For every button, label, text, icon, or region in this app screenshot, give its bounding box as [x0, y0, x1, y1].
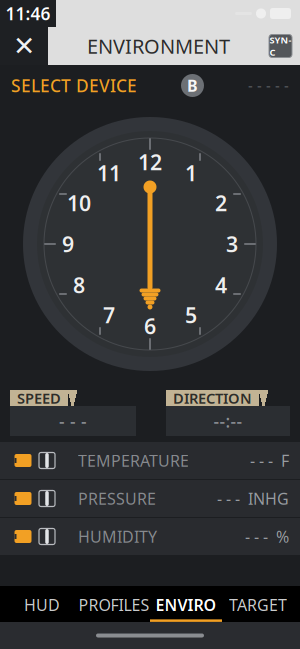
button[interactable]: PROFILES	[78, 586, 150, 622]
staticText: 11	[97, 159, 121, 187]
staticText: ENVIRONMENT	[87, 33, 230, 59]
staticText: - - - %	[245, 526, 289, 547]
button[interactable]: PRESSURE	[0, 480, 300, 517]
staticText: 5	[185, 301, 197, 329]
staticText: 8	[73, 271, 85, 299]
staticText: --:--	[213, 409, 242, 432]
staticText: ✕	[13, 31, 35, 61]
staticText: 7	[103, 301, 115, 329]
button[interactable]: HUMIDITY	[0, 518, 300, 555]
staticText: 9	[62, 230, 74, 258]
staticText: DIRECTION	[173, 388, 252, 408]
button[interactable]: Bluetooth	[178, 71, 206, 99]
button[interactable]: TARGET	[222, 586, 294, 622]
staticText: 11:46	[5, 2, 50, 25]
staticText: TEMPERATURE	[78, 450, 189, 471]
staticText: HUD	[24, 594, 60, 615]
staticText: 2	[215, 189, 227, 217]
button[interactable]: Sync	[269, 34, 292, 57]
staticText: 12	[138, 148, 162, 176]
staticText: PRESSURE	[78, 488, 156, 509]
staticText: 1	[185, 159, 197, 187]
staticText: SYNC	[269, 34, 291, 58]
button[interactable]: HUD	[6, 586, 78, 622]
staticText: - - -	[59, 409, 87, 432]
staticText: SPEED	[17, 388, 61, 408]
staticText: - - - - -	[248, 76, 289, 95]
staticText: 4	[215, 271, 227, 299]
staticText: B	[187, 75, 198, 96]
staticText: - - - F	[250, 450, 289, 471]
button[interactable]: SELECT DEVICE	[0, 66, 137, 105]
button[interactable]: Menu	[0, 27, 48, 65]
staticText: 10	[67, 189, 91, 217]
staticText: 6	[144, 312, 156, 340]
button[interactable]: ENVIRO	[150, 586, 222, 622]
staticText: TARGET	[229, 594, 287, 615]
staticText: SELECT DEVICE	[11, 74, 137, 97]
staticText: PROFILES	[78, 594, 149, 615]
staticText: - - - INHG	[217, 488, 289, 509]
button[interactable]: TEMPERATURE	[0, 442, 300, 479]
staticText: 3	[226, 230, 238, 258]
staticText: ENVIRO	[155, 594, 216, 615]
staticText: HUMIDITY	[78, 526, 157, 547]
